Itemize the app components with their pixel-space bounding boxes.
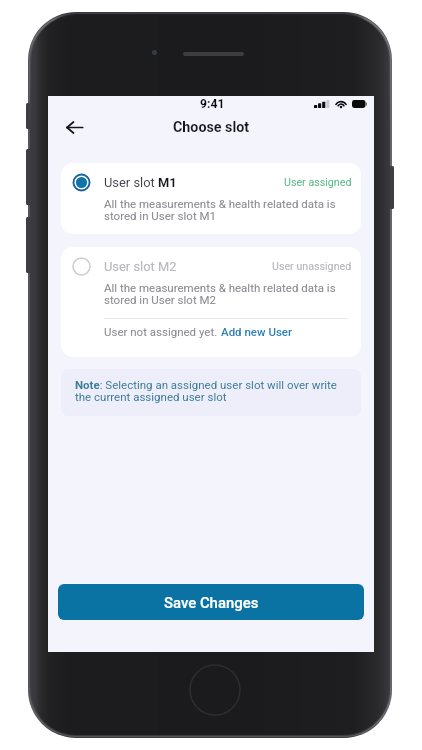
button[interactable]: Add new User xyxy=(221,325,293,338)
staticText: Note: Selecting an assigned user slot wi… xyxy=(75,378,349,404)
button[interactable]: Save Changes xyxy=(58,584,364,620)
staticText: User slot M2 xyxy=(104,259,177,274)
staticText: Add new User xyxy=(221,325,293,338)
staticText: User slot M1 xyxy=(104,175,177,190)
staticText: Choose slot xyxy=(173,119,250,136)
button[interactable]: User slot M2 xyxy=(61,247,361,357)
button[interactable]: User slot M1 xyxy=(61,163,361,234)
button[interactable]: Back xyxy=(58,113,90,142)
staticText: Save Changes xyxy=(164,594,259,611)
staticText: User not assigned yet. xyxy=(104,325,221,338)
staticText: All the measurements & health related da… xyxy=(104,197,352,222)
staticText: 9:41 xyxy=(200,97,225,111)
staticText: User unassigned xyxy=(272,260,352,273)
staticText: User assigned xyxy=(284,176,352,189)
staticText: All the measurements & health related da… xyxy=(104,281,352,306)
